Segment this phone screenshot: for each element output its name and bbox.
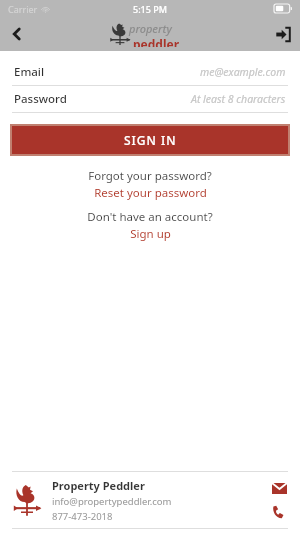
staticText: Don't have an account? — [87, 209, 213, 225]
staticText: peddler — [133, 36, 180, 47]
staticText: Sign up — [130, 226, 171, 242]
staticText: Property Peddler — [52, 478, 145, 493]
staticText: info@propertypeddler.com — [52, 495, 172, 508]
button[interactable]: Sign up — [130, 226, 171, 242]
staticText: Carrier — [8, 3, 38, 15]
staticText: 877-473-2018 — [52, 510, 113, 523]
staticText: Email — [14, 64, 45, 80]
staticText: Reset your password — [94, 185, 207, 201]
button[interactable]: Back — [0, 17, 34, 51]
staticText: Password — [14, 91, 67, 107]
staticText: me@example.com — [200, 65, 286, 79]
staticText: 5:15 PM — [133, 3, 167, 15]
button[interactable]: Call us — [270, 503, 288, 521]
staticText: At least 8 characters — [191, 92, 286, 106]
button[interactable]: Email — [0, 59, 300, 85]
button[interactable]: Email us — [270, 479, 288, 497]
staticText: Forgot your password? — [88, 168, 212, 184]
button[interactable]: Password — [0, 86, 300, 112]
button[interactable]: Sign in — [266, 17, 300, 51]
staticText: property — [129, 21, 172, 36]
button[interactable]: Reset your password — [94, 185, 207, 201]
button[interactable]: SIGN IN — [12, 126, 288, 154]
staticText: SIGN IN — [124, 132, 177, 148]
